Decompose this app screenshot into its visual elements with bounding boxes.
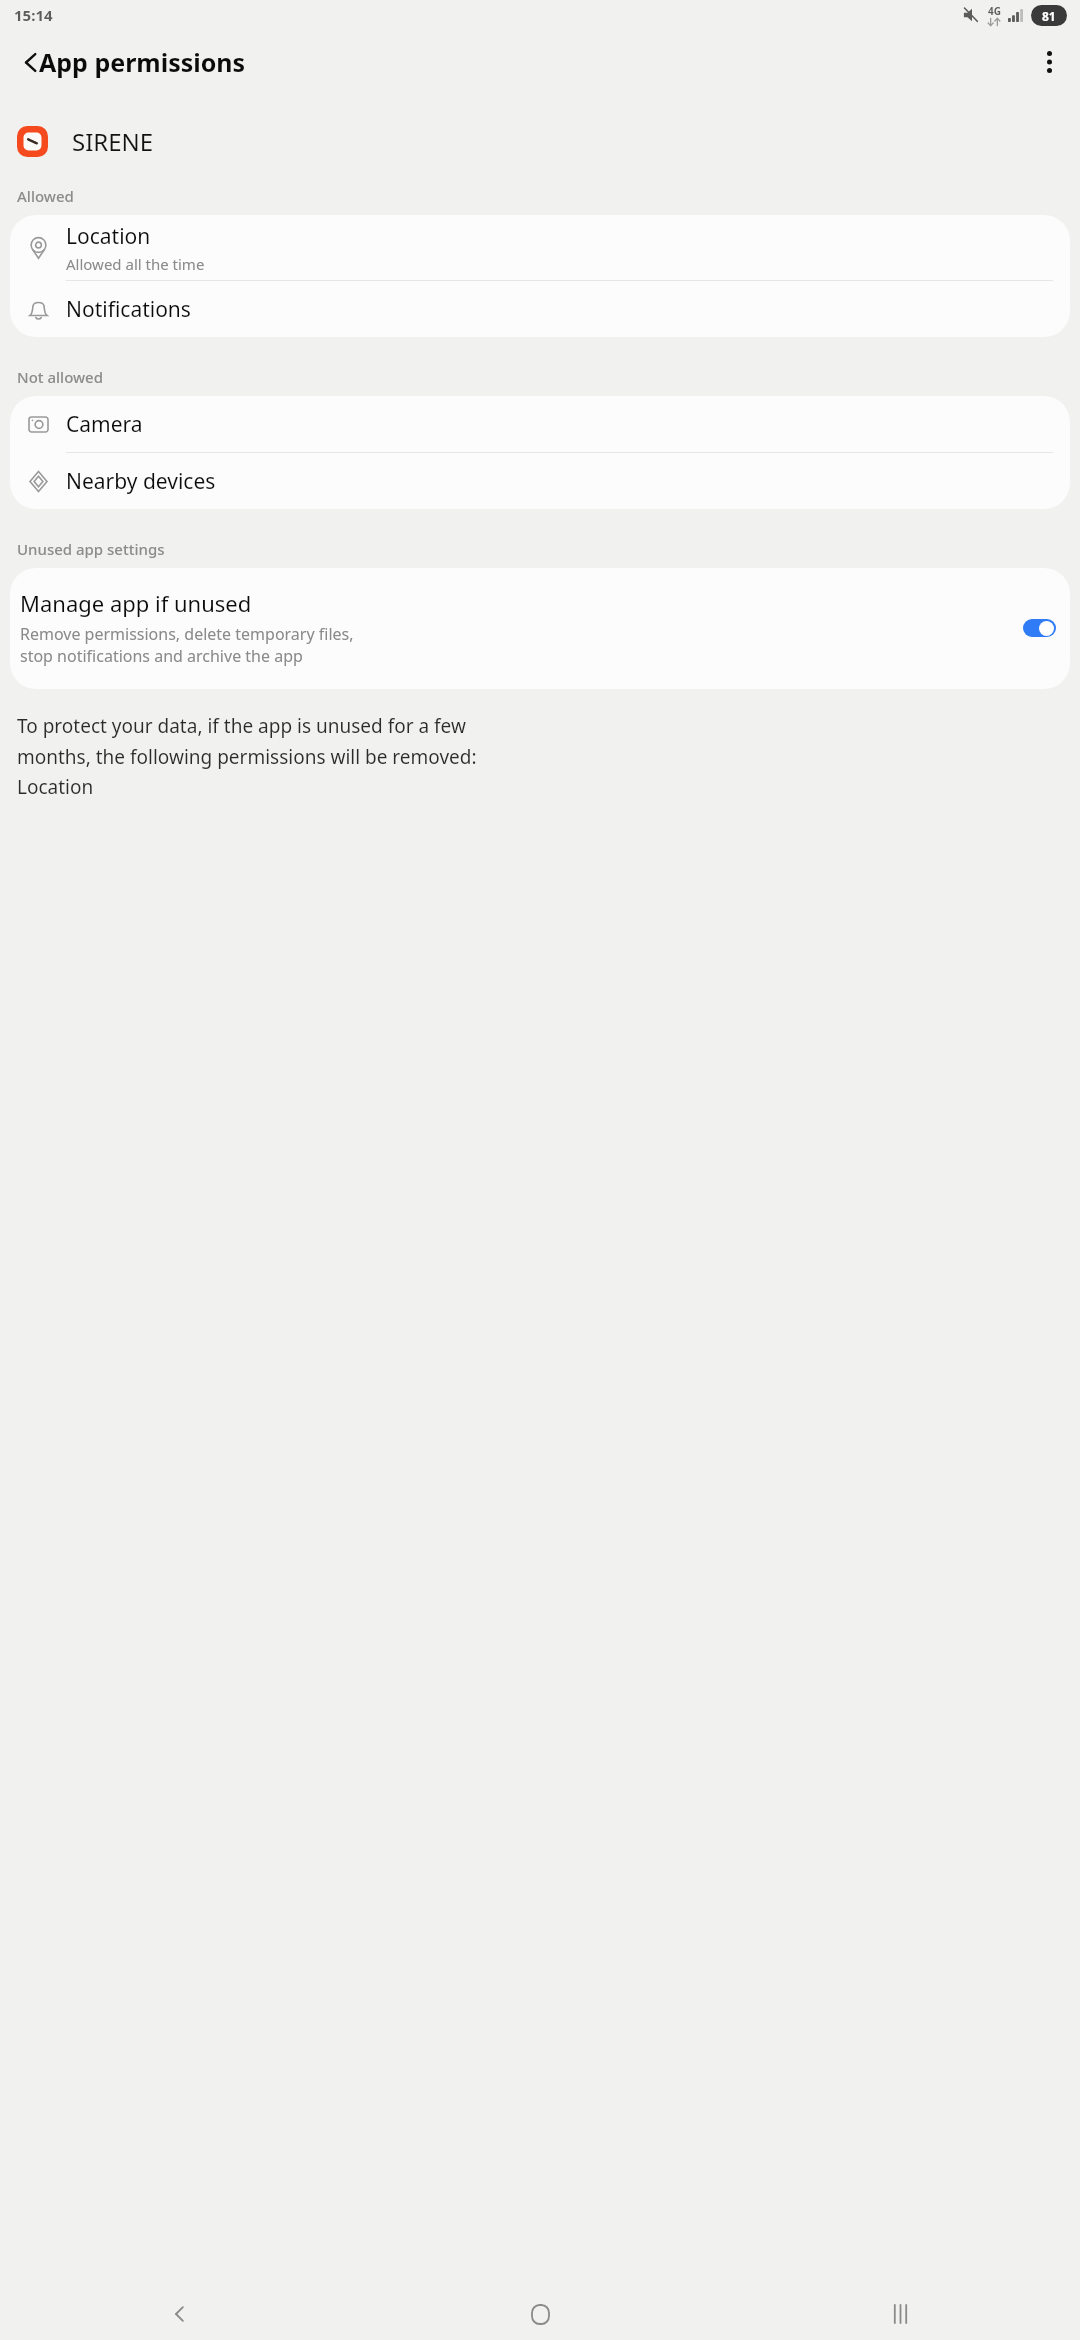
- staticText: Notifications: [66, 295, 191, 324]
- button[interactable]: Notifications: [10, 281, 1070, 337]
- staticText: To protect your data, if the app is unus…: [17, 713, 477, 799]
- button[interactable]: Location: [10, 215, 1070, 280]
- staticText: SIRENE: [72, 125, 154, 158]
- staticText: App permissions: [39, 45, 246, 79]
- button[interactable]: Back: [0, 2288, 360, 2340]
- staticText: Allowed all the time: [66, 254, 205, 274]
- staticText: Not allowed: [17, 367, 104, 387]
- staticText: Remove permissions, delete temporary fil…: [20, 623, 354, 667]
- button[interactable]: Recents: [720, 2288, 1080, 2340]
- staticText: Nearby devices: [66, 467, 216, 496]
- button[interactable]: Home: [360, 2288, 720, 2340]
- staticText: Allowed: [17, 186, 74, 206]
- button[interactable]: Back: [6, 37, 56, 87]
- staticText: Manage app if unused: [20, 588, 252, 618]
- staticText: Unused app settings: [17, 539, 165, 559]
- staticText: 15:14: [14, 5, 53, 25]
- button[interactable]: Camera: [10, 396, 1070, 452]
- staticText: Camera: [66, 410, 143, 439]
- staticText: Location: [66, 222, 151, 251]
- button[interactable]: More options: [1025, 38, 1073, 86]
- button[interactable]: Nearby devices: [10, 453, 1070, 509]
- staticText: 4G: [988, 4, 1001, 18]
- staticText: 81: [1042, 8, 1056, 24]
- button[interactable]: Manage app if unused toggle: [1023, 619, 1056, 637]
- button[interactable]: Manage app if unused: [10, 568, 1070, 689]
